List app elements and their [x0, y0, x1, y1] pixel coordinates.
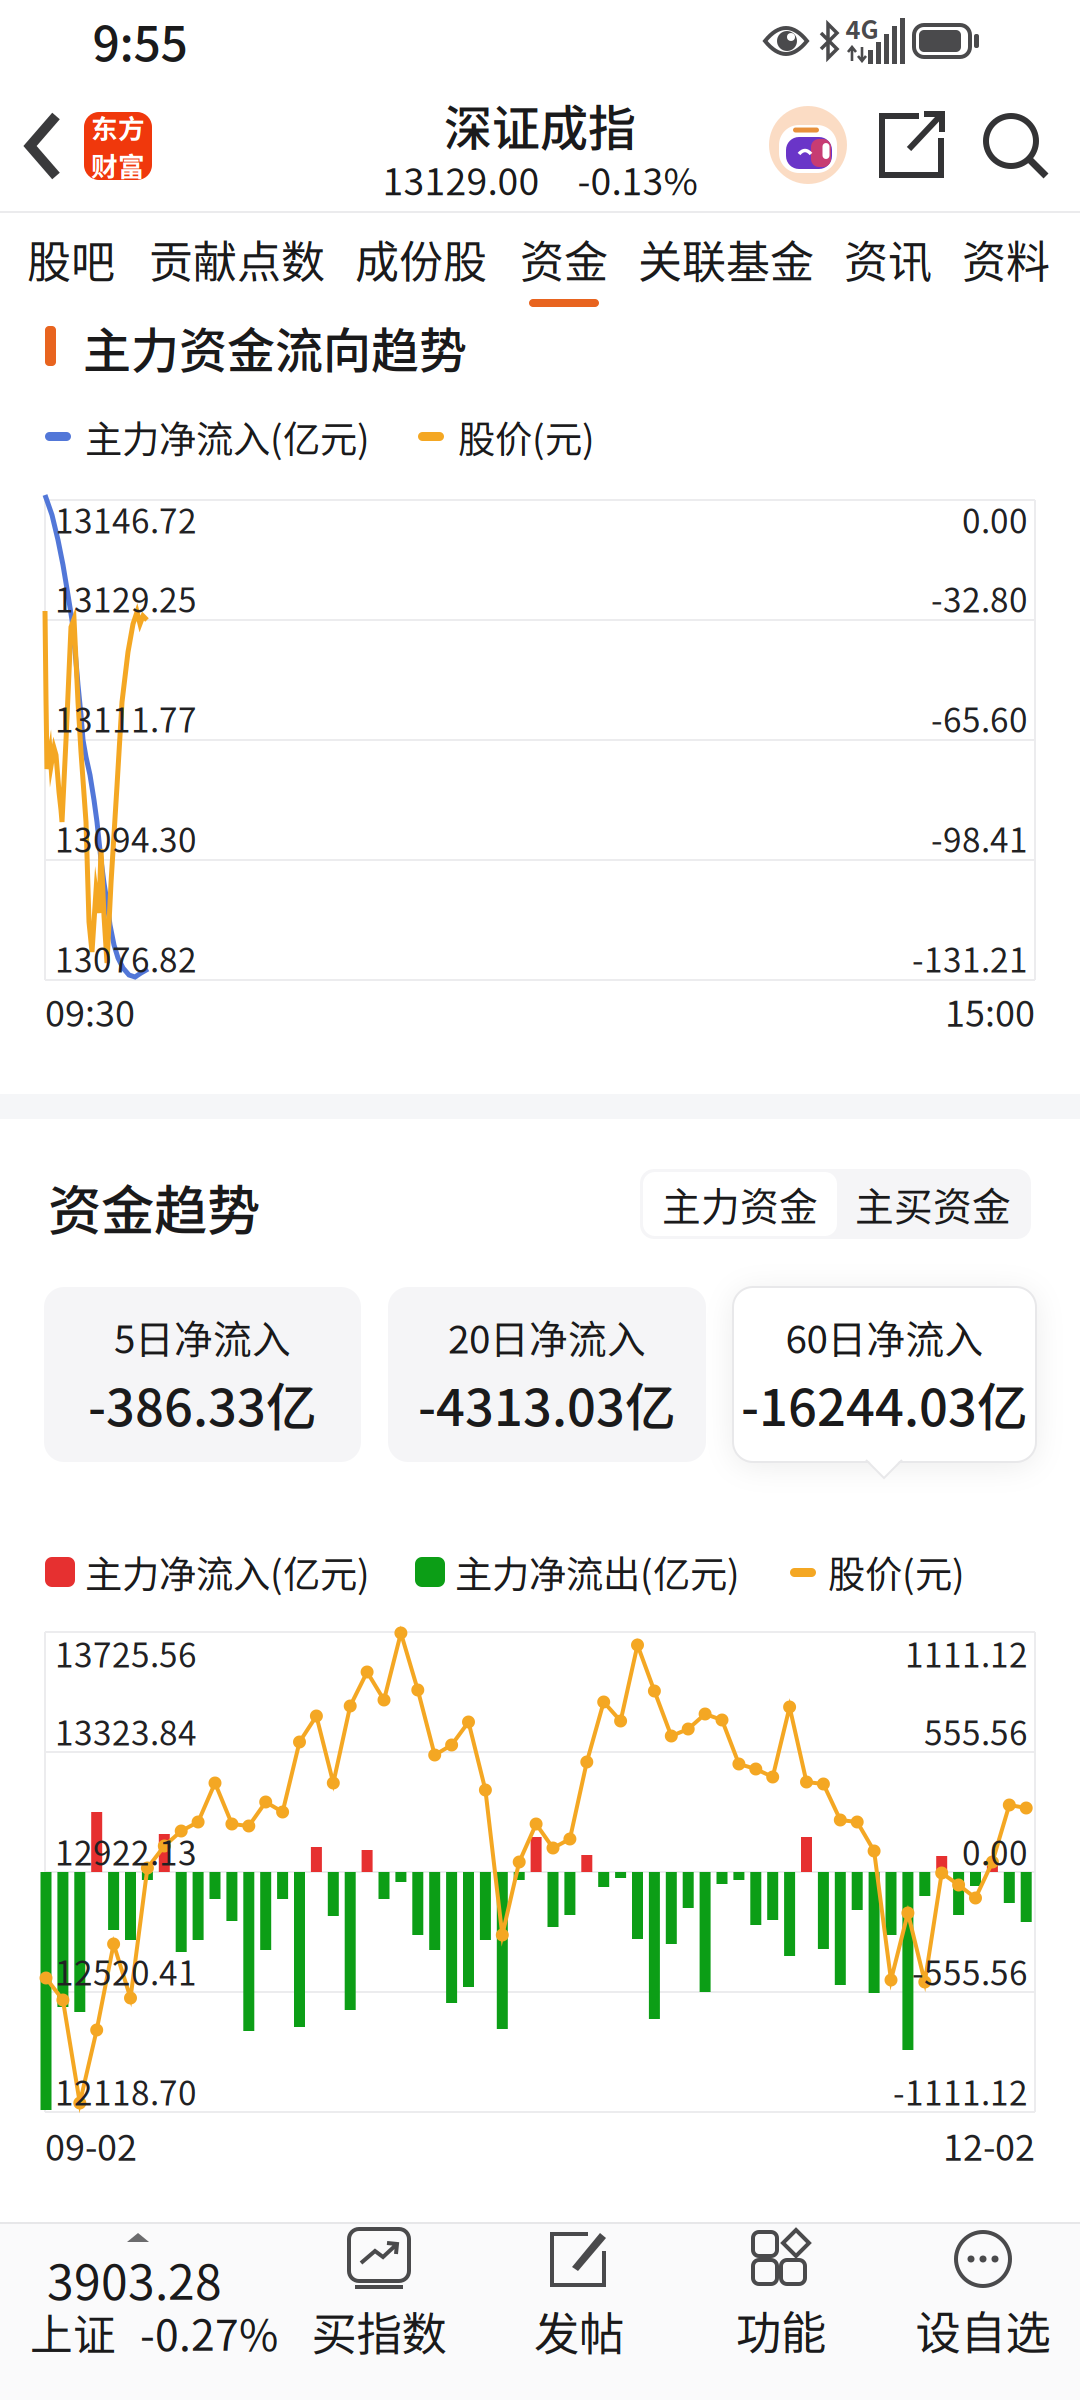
staticText: 资料 — [962, 228, 1050, 290]
staticText: 主力资金流向趋势 — [83, 313, 467, 381]
staticText: 贡献点数 — [149, 228, 325, 290]
staticText: -16244.03亿 — [741, 1368, 1028, 1439]
button[interactable]: Share — [879, 113, 945, 179]
button[interactable]: 关联基金 — [638, 221, 814, 297]
staticText: 0.00 — [962, 1827, 1028, 1875]
staticText: 股价(元) — [828, 1546, 965, 1598]
staticText: 关联基金 — [638, 228, 814, 290]
staticText: 资金趋势 — [48, 1169, 260, 1245]
staticText: 12922.13 — [55, 1827, 197, 1875]
staticText: -555.56 — [912, 1947, 1028, 1995]
button[interactable]: 20日净流入 — [388, 1287, 706, 1462]
staticText: 成份股 — [355, 228, 487, 290]
staticText: 发帖 — [534, 2299, 624, 2363]
staticText: 上证 — [30, 2302, 116, 2362]
staticText: 设自选 — [915, 2298, 1050, 2362]
staticText: -0.27% — [140, 2302, 278, 2362]
staticText: 东方 — [91, 108, 145, 146]
staticText: 功能 — [736, 2298, 826, 2362]
button[interactable]: 股吧 — [27, 221, 115, 297]
staticText: 股价(元) — [458, 411, 595, 463]
button[interactable]: 5日净流入 — [44, 1287, 361, 1462]
staticText: 12-02 — [943, 2120, 1035, 2170]
button[interactable]: 设自选 — [915, 2230, 1050, 2362]
staticText: -4313.03亿 — [418, 1368, 676, 1439]
staticText: 555.56 — [924, 1707, 1028, 1755]
staticText: 股吧 — [27, 228, 115, 290]
staticText: 深证成指 — [444, 91, 636, 159]
staticText: -32.80 — [931, 574, 1028, 622]
staticText: 5日净流入 — [114, 1309, 291, 1364]
staticText: 财富 — [91, 146, 145, 184]
button[interactable]: Back — [26, 112, 62, 180]
staticText: 20日净流入 — [448, 1309, 646, 1364]
staticText: 15:00 — [945, 986, 1035, 1036]
button[interactable]: 主买资金 — [838, 1172, 1028, 1236]
staticText: 0.00 — [962, 495, 1028, 543]
button[interactable]: 东方财富 — [84, 112, 152, 180]
staticText: -65.60 — [931, 694, 1028, 742]
staticText: 主买资金 — [855, 1177, 1011, 1231]
staticText: 13129.00 — [382, 152, 539, 205]
staticText: 资金 — [520, 228, 608, 290]
staticText: 60日净流入 — [785, 1309, 983, 1364]
staticText: 13725.56 — [55, 1629, 197, 1677]
staticText: -0.13% — [577, 152, 697, 205]
button[interactable]: 成份股 — [355, 221, 487, 297]
button[interactable]: 资料 — [962, 221, 1050, 297]
staticText: -386.33亿 — [88, 1368, 317, 1439]
staticText: 资讯 — [844, 228, 932, 290]
staticText: 买指数 — [311, 2299, 446, 2363]
staticText: 主力净流出(亿元) — [455, 1546, 740, 1598]
button[interactable]: 3903.28 — [30, 2212, 320, 2362]
button[interactable]: 60日净流入 — [733, 1287, 1036, 1462]
staticText: 12520.41 — [55, 1947, 197, 1995]
staticText: -1111.12 — [893, 2067, 1028, 2115]
staticText: 3903.28 — [47, 2245, 222, 2313]
staticText: 13094.30 — [55, 814, 197, 862]
staticText: 4G — [845, 10, 878, 46]
staticText: -131.21 — [912, 934, 1028, 982]
staticText: 1111.12 — [905, 1629, 1028, 1677]
staticText: 主力资金 — [662, 1177, 818, 1231]
staticText: 09:30 — [45, 986, 135, 1036]
staticText: 13076.82 — [55, 934, 197, 982]
staticText: 09-02 — [45, 2120, 137, 2170]
staticText: -98.41 — [931, 814, 1028, 862]
button[interactable]: 智能助手 — [769, 106, 847, 184]
staticText: 主力净流入(亿元) — [85, 1546, 370, 1598]
button[interactable]: 主力资金 — [643, 1172, 837, 1236]
staticText: 13146.72 — [55, 495, 197, 543]
button[interactable]: 功能 — [736, 2230, 826, 2362]
button[interactable]: 买指数 — [311, 2229, 446, 2363]
button[interactable]: 贡献点数 — [149, 221, 325, 297]
button[interactable]: 发帖 — [534, 2229, 624, 2363]
button[interactable]: Search — [986, 116, 1048, 178]
button[interactable]: 资讯 — [844, 221, 932, 297]
staticText: 12118.70 — [55, 2067, 197, 2115]
staticText: 9:55 — [92, 6, 187, 74]
staticText: 13129.25 — [55, 574, 197, 622]
staticText: 主力净流入(亿元) — [85, 411, 370, 463]
staticText: 13111.77 — [55, 694, 197, 742]
button[interactable]: 资金 — [520, 221, 608, 297]
staticText: 13323.84 — [55, 1707, 197, 1755]
